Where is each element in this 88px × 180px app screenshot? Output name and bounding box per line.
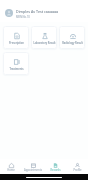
button[interactable]: Radiology Result bbox=[59, 26, 85, 49]
button[interactable]: Records bbox=[44, 163, 66, 172]
button[interactable]: Laboratory Result bbox=[31, 26, 57, 49]
other: Profile photo bbox=[5, 9, 13, 17]
staticText: Appointments bbox=[24, 168, 42, 172]
staticText: Dimples Av Test caaaaaa bbox=[16, 9, 59, 14]
staticText: Home bbox=[7, 168, 15, 172]
button[interactable]: Prescription bbox=[3, 26, 29, 49]
button[interactable]: Home bbox=[0, 163, 22, 172]
staticText: MRN No.10 bbox=[16, 15, 30, 19]
button[interactable]: Treatments bbox=[3, 52, 29, 75]
button[interactable]: Profile bbox=[66, 163, 88, 172]
staticText: Laboratory Result bbox=[33, 41, 56, 45]
button[interactable]: Appointments bbox=[22, 163, 44, 172]
staticText: Profile bbox=[73, 168, 82, 172]
staticText: Records bbox=[50, 168, 61, 172]
staticText: Radiology Result bbox=[62, 41, 83, 45]
staticText: Treatments bbox=[9, 67, 24, 71]
staticText: Prescription bbox=[9, 41, 24, 45]
